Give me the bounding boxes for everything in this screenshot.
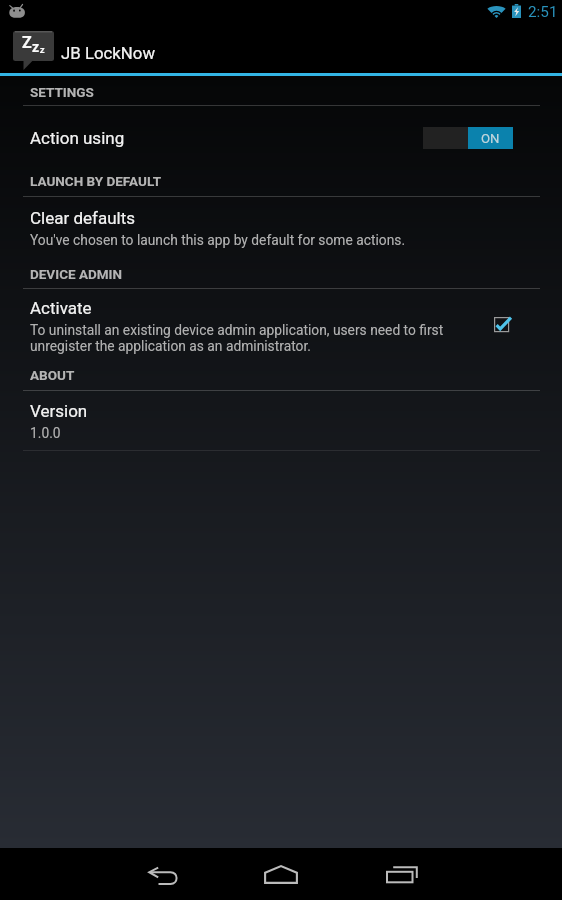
- staticText: SETTINGS: [30, 84, 94, 100]
- button[interactable]: Activate: [0, 293, 562, 365]
- button[interactable]: Home: [241, 848, 321, 900]
- button[interactable]: Action using: [0, 111, 562, 164]
- staticText: ABOUT: [30, 367, 75, 383]
- staticText: z: [32, 39, 40, 55]
- button[interactable]: Clear defaults: [0, 203, 562, 258]
- staticText: You've chosen to launch this app by defa…: [30, 232, 406, 248]
- staticText: JB LockNow: [61, 43, 156, 63]
- button[interactable]: Activate device admin: [494, 317, 518, 341]
- button[interactable]: Version: [0, 396, 562, 451]
- staticText: z: [40, 45, 45, 56]
- button[interactable]: Back: [124, 850, 204, 900]
- staticText: Activate: [30, 298, 92, 318]
- staticText: Version: [30, 401, 88, 421]
- button[interactable]: Z: [0, 24, 562, 73]
- button[interactable]: Action using toggle: [423, 127, 513, 149]
- staticText: 1.0.0: [30, 425, 61, 441]
- button[interactable]: Recent apps: [362, 849, 442, 900]
- staticText: 2:51: [528, 3, 558, 21]
- staticText: Z: [22, 33, 32, 52]
- staticText: To uninstall an existing device admin ap…: [30, 322, 470, 355]
- staticText: DEVICE ADMIN: [30, 266, 123, 282]
- staticText: ON: [481, 131, 500, 146]
- staticText: LAUNCH BY DEFAULT: [30, 173, 162, 189]
- staticText: Clear defaults: [30, 208, 136, 228]
- staticText: Action using: [30, 128, 125, 148]
